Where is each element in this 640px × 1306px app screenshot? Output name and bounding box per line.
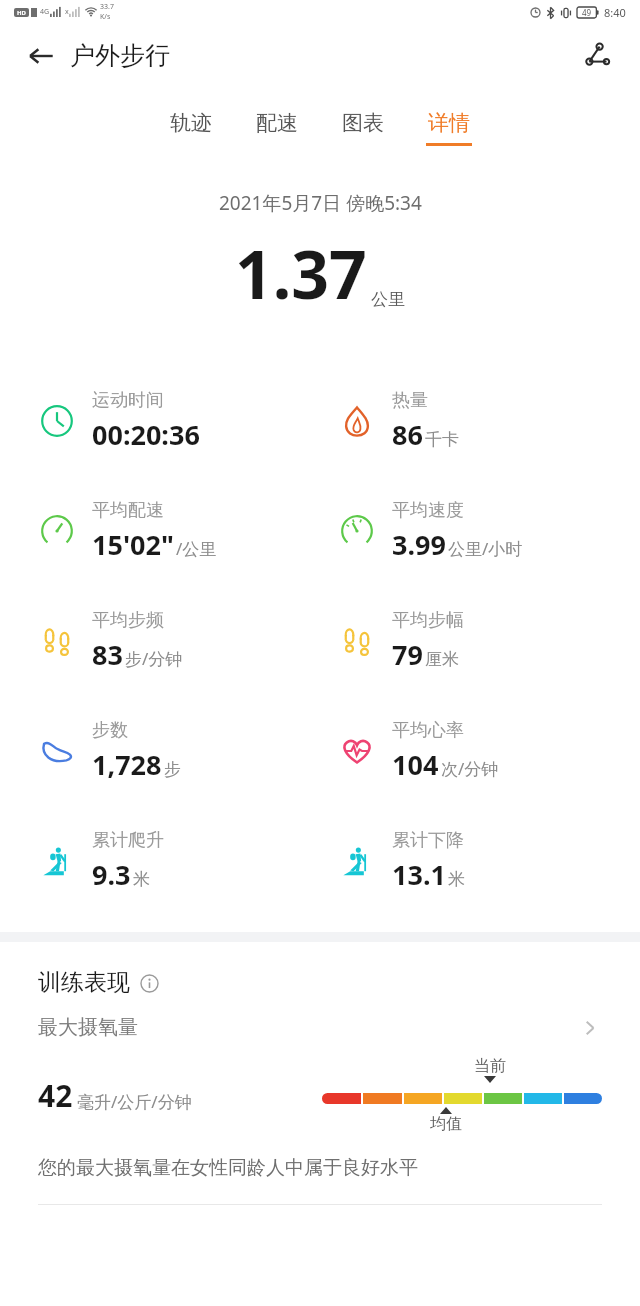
button[interactable]: 平均速度 (336, 499, 523, 563)
staticText: 平均步幅 (392, 609, 464, 632)
button[interactable]: 累计爬升 (36, 829, 164, 893)
staticText: 104 (392, 746, 439, 783)
staticText: x (65, 7, 69, 17)
staticText: 步 (164, 759, 181, 780)
staticText: 1,728 (92, 746, 162, 783)
staticText: 米 (448, 869, 465, 890)
other: Info (139, 973, 159, 993)
other: Back (26, 41, 56, 71)
staticText: 累计爬升 (92, 829, 164, 852)
button[interactable]: 运动时间 (36, 389, 200, 453)
staticText: 79 (392, 636, 423, 673)
staticText: 步数 (92, 719, 128, 742)
staticText: 15'02" (92, 526, 174, 563)
staticText: 83 (92, 636, 123, 673)
staticText: 13.1 (392, 856, 446, 893)
button[interactable]: 热量 (336, 389, 459, 453)
staticText: 3.99 (392, 526, 446, 563)
button[interactable]: 累计下降 (336, 829, 465, 893)
staticText: 图表 (342, 110, 384, 136)
other: More (578, 1016, 602, 1040)
button[interactable]: 步数 (36, 719, 181, 783)
staticText: 平均步频 (92, 609, 164, 632)
staticText: 训练表现 (38, 968, 130, 997)
button[interactable]: 平均步频 (36, 609, 183, 673)
staticText: 当前 (474, 1056, 506, 1076)
staticText: /公里 (176, 537, 217, 560)
button[interactable]: 平均步幅 (336, 609, 464, 673)
button[interactable]: 配速 (250, 108, 304, 148)
staticText: 公里/小时 (448, 537, 523, 560)
staticText: 平均速度 (392, 499, 464, 522)
staticText: 详情 (428, 110, 470, 136)
staticText: 配速 (256, 110, 298, 136)
staticText: HD (17, 9, 26, 17)
staticText: 户外步行 (70, 40, 170, 71)
staticText: 86 (392, 416, 423, 453)
staticText: 9.3 (92, 856, 131, 893)
staticText: 均值 (430, 1114, 462, 1134)
staticText: 平均心率 (392, 719, 464, 742)
staticText: 次/分钟 (441, 757, 499, 780)
staticText: 热量 (392, 389, 428, 412)
staticText: 33.7 (100, 2, 114, 12)
staticText: 公里 (371, 289, 405, 310)
staticText: 00:20:36 (92, 416, 200, 453)
staticText: 厘米 (425, 649, 459, 670)
button[interactable]: Back (20, 34, 176, 77)
staticText: 2021年5月7日 傍晚5:34 (219, 190, 422, 216)
button[interactable]: 详情 (422, 108, 476, 148)
button[interactable]: Share (574, 33, 618, 77)
staticText: 8:40 (604, 5, 626, 20)
staticText: 42 (38, 1075, 73, 1116)
staticText: 轨迹 (170, 110, 212, 136)
button[interactable]: 轨迹 (164, 108, 218, 148)
staticText: 49 (582, 7, 592, 18)
button[interactable]: 平均心率 (336, 719, 499, 783)
staticText: 1.37 (235, 228, 367, 318)
staticText: 毫升/公斤/分钟 (77, 1090, 192, 1113)
staticText: 平均配速 (92, 499, 164, 522)
staticText: K/s (100, 12, 111, 22)
staticText: 运动时间 (92, 389, 164, 412)
staticText: 4G (40, 7, 50, 17)
staticText: 累计下降 (392, 829, 464, 852)
button[interactable]: 平均配速 (36, 499, 217, 563)
button[interactable]: 最大摄氧量 (38, 1015, 602, 1040)
staticText: 步/分钟 (125, 647, 183, 670)
staticText: 您的最大摄氧量在女性同龄人中属于良好水平 (38, 1156, 418, 1180)
staticText: 千卡 (425, 429, 459, 450)
button[interactable]: 训练表现 (38, 968, 159, 997)
staticText: 米 (133, 869, 150, 890)
staticText: 最大摄氧量 (38, 1015, 138, 1040)
button[interactable]: 图表 (336, 108, 390, 148)
